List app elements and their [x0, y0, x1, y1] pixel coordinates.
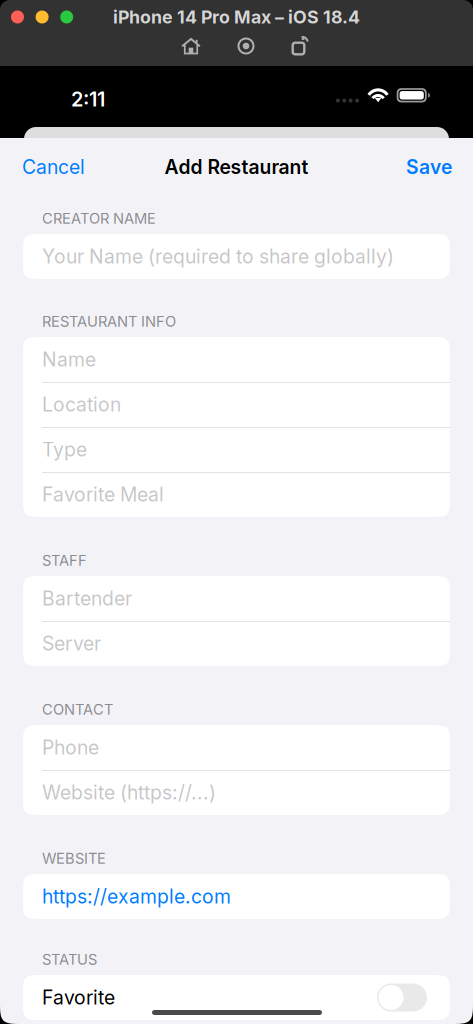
- staticText: Favorite: [42, 986, 115, 1009]
- staticText: Phone: [42, 736, 99, 759]
- staticText: CREATOR NAME: [42, 210, 156, 227]
- staticText: Server: [42, 632, 101, 655]
- staticText: Website (https://...): [42, 781, 216, 804]
- staticText: WEBSITE: [42, 850, 106, 867]
- staticText: Cancel: [22, 155, 85, 179]
- staticText: STATUS: [42, 951, 97, 968]
- button[interactable]: Home: [181, 37, 200, 54]
- staticText: Type: [42, 438, 87, 461]
- button[interactable]: Server: [23, 621, 450, 666]
- staticText: Your Name (required to share globally): [42, 245, 394, 268]
- staticText: RESTAURANT INFO: [42, 313, 176, 330]
- button[interactable]: Name: [23, 337, 450, 382]
- staticText: STAFF: [42, 552, 87, 569]
- button[interactable]: Location: [23, 382, 450, 427]
- button[interactable]: Rotate device: [291, 36, 309, 55]
- button[interactable]: Record screen: [237, 37, 254, 54]
- button[interactable]: Favorite Meal: [23, 472, 450, 517]
- staticText: 2:11: [71, 87, 105, 111]
- button[interactable]: Phone: [23, 725, 450, 770]
- staticText: Save: [406, 155, 452, 179]
- staticText: CONTACT: [42, 701, 113, 718]
- staticText: Location: [42, 393, 121, 416]
- staticText: iPhone 14 Pro Max – iOS 18.4: [113, 6, 360, 28]
- button[interactable]: Bartender: [23, 576, 450, 621]
- button[interactable]: Cancel: [0, 152, 99, 182]
- button[interactable]: Your Name (required to share globally): [23, 234, 450, 279]
- button[interactable]: https://example.com: [23, 874, 450, 919]
- staticText: https://example.com: [42, 885, 231, 908]
- button[interactable]: Favorite: [23, 975, 450, 1020]
- staticText: Add Restaurant: [164, 155, 308, 179]
- staticText: Favorite Meal: [42, 483, 164, 506]
- button[interactable]: Website (https://...): [23, 770, 450, 815]
- staticText: Name: [42, 348, 96, 371]
- staticText: Bartender: [42, 587, 132, 610]
- button[interactable]: Save: [392, 152, 473, 182]
- button[interactable]: Type: [23, 427, 450, 472]
